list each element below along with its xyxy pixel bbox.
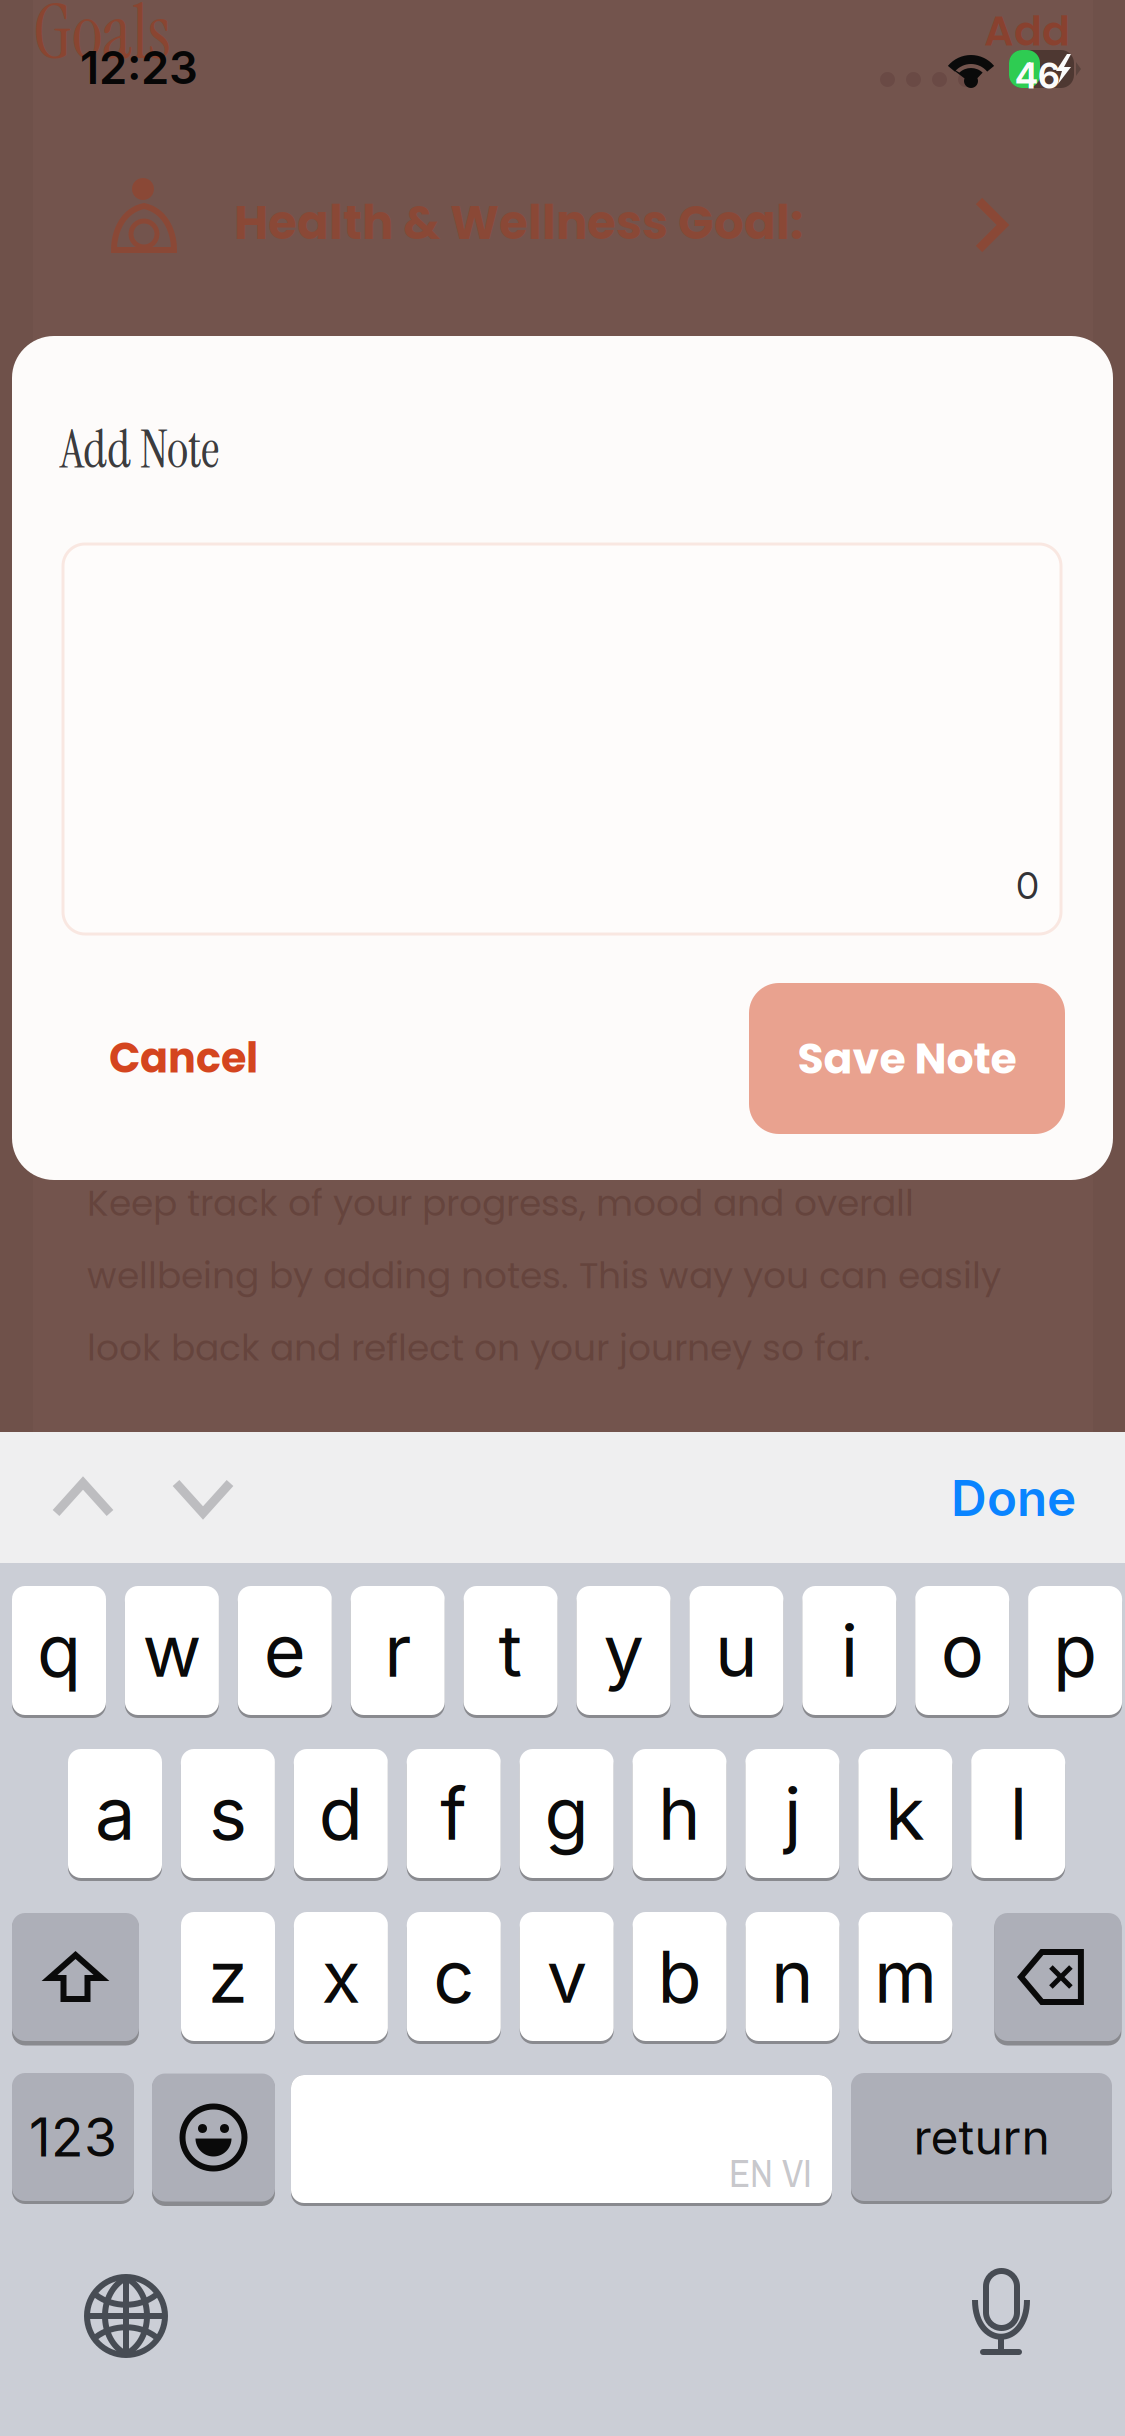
staticText: Keep track of your progress, mood and ov… [87,1178,914,1228]
staticText: r [384,1607,411,1694]
button[interactable]: q [12,1586,106,1718]
button[interactable]: return [851,2073,1112,2204]
staticText: o [941,1607,984,1694]
button[interactable]: m [858,1912,952,2044]
staticText: h [658,1770,701,1857]
staticText: c [433,1933,474,2020]
staticText: Cancel [109,1029,258,1087]
staticText: q [37,1607,81,1694]
staticText: m [874,1933,937,2020]
button[interactable]: Shift [12,1914,139,2042]
staticText: z [208,1933,248,2020]
button[interactable]: Emoji [152,2073,275,2204]
staticText: Done [951,1468,1076,1528]
staticText: p [1053,1607,1097,1694]
button[interactable]: s [181,1749,275,1881]
button[interactable]: Next field [148,1443,258,1553]
staticText: n [771,1933,814,2020]
button[interactable]: x [294,1912,388,2044]
button[interactable]: f [407,1749,501,1881]
button[interactable]: v [520,1912,614,2044]
button[interactable]: c [407,1912,501,2044]
staticText: s [209,1770,247,1857]
staticText: y [603,1607,643,1694]
button[interactable]: g [520,1749,614,1881]
button[interactable]: p [1028,1586,1122,1718]
staticText: Add [984,2,1070,60]
button[interactable]: Done [896,1443,1076,1553]
staticText: 12:23 [80,40,198,95]
staticText: Add Note [60,416,219,484]
button[interactable]: o [915,1586,1009,1718]
staticText: x [321,1933,360,2020]
button[interactable]: z [181,1912,275,2044]
staticText: look back and reflect on your journey so… [87,1323,871,1373]
staticText: a [95,1770,135,1857]
button[interactable]: 123 [12,2073,134,2204]
staticText: i [841,1607,858,1694]
button[interactable]: d [294,1749,388,1881]
staticText: 0 [1016,863,1039,908]
button[interactable]: u [689,1586,783,1718]
button[interactable]: i [802,1586,896,1718]
button[interactable]: Save Note [749,983,1065,1134]
button[interactable]: a [68,1749,162,1881]
button[interactable]: y [576,1586,670,1718]
staticText: Goals [33,0,171,81]
button[interactable]: space [291,2073,832,2204]
staticText: k [885,1770,925,1857]
staticText: return [913,2108,1049,2166]
staticText: 46 [1015,55,1060,97]
button[interactable]: Cancel [109,1010,329,1106]
staticText: Health & Wellness Goal: [234,190,803,255]
button[interactable]: w [125,1586,219,1718]
staticText: w [142,1607,201,1694]
button[interactable]: k [858,1749,952,1881]
staticText: l [1010,1770,1027,1857]
staticText: t [499,1607,523,1694]
staticText: g [545,1770,589,1857]
button[interactable]: r [351,1586,445,1718]
button[interactable]: b [633,1912,727,2044]
staticText: wellbeing by adding notes. This way you … [87,1250,1001,1301]
button[interactable]: Next keyboard [85,2275,167,2357]
staticText: d [319,1770,363,1857]
button[interactable]: n [745,1912,839,2044]
button[interactable]: Delete [994,1912,1121,2043]
button[interactable]: h [632,1749,726,1881]
staticText: Save Note [797,1029,1016,1088]
button[interactable]: Previous field [28,1443,138,1553]
button[interactable]: l [971,1749,1065,1881]
button[interactable]: Dictation [972,2271,1030,2359]
staticText: EN VI [729,2147,812,2199]
staticText: f [440,1770,467,1857]
button[interactable]: e [238,1586,332,1718]
staticText: b [658,1933,702,2020]
staticText: 123 [29,2105,117,2169]
staticText: u [715,1607,758,1694]
button[interactable]: j [745,1749,839,1881]
staticText: j [784,1770,801,1857]
staticText: e [264,1607,306,1694]
button[interactable]: t [464,1586,558,1718]
staticText: v [547,1933,587,2020]
